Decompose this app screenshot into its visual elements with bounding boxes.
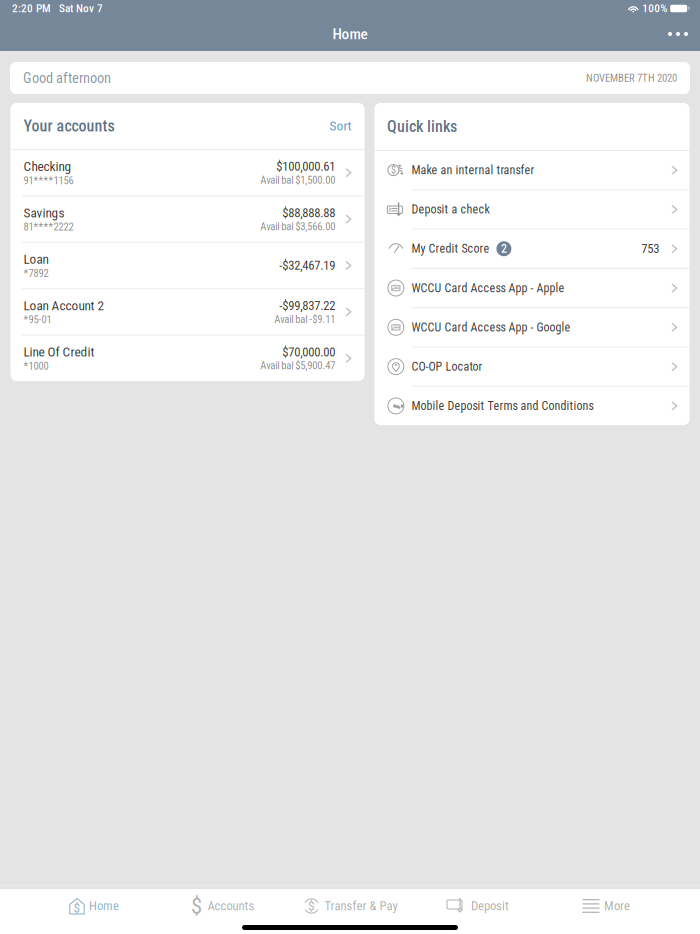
staticText: Deposit a check bbox=[411, 202, 489, 216]
staticText: Avail bal $3,566.00 bbox=[260, 220, 335, 233]
button[interactable]: CO-OP Locator bbox=[374, 347, 689, 386]
staticText: 753 bbox=[641, 241, 659, 256]
button[interactable]: $ bbox=[286, 886, 414, 926]
staticText: $ bbox=[191, 893, 202, 919]
staticText: CO-OP Locator bbox=[411, 360, 482, 374]
staticText: Transfer & Pay bbox=[324, 899, 397, 913]
staticText: WCCU Card Access App - Google bbox=[411, 320, 570, 334]
button[interactable]: Deposit bbox=[414, 886, 542, 926]
staticText: Avail bal $5,900.47 bbox=[260, 359, 335, 372]
staticText: Good afternoon bbox=[23, 70, 111, 86]
button[interactable]: Loan bbox=[10, 243, 364, 288]
button[interactable]: Deposit a check bbox=[374, 190, 689, 229]
staticText: Home bbox=[332, 25, 367, 43]
staticText: 91****1156 bbox=[23, 174, 73, 187]
staticText: $100,000.61 bbox=[276, 159, 335, 174]
button[interactable]: Mobile Deposit Terms and Conditions bbox=[374, 387, 689, 425]
staticText: *95-01 bbox=[23, 313, 51, 326]
button[interactable]: More bbox=[542, 886, 670, 926]
staticText: $ bbox=[391, 164, 396, 176]
staticText: *7892 bbox=[23, 267, 48, 280]
button[interactable]: Sort bbox=[329, 118, 351, 134]
staticText: 81****2222 bbox=[23, 221, 73, 233]
staticText: My Credit Score bbox=[411, 242, 489, 256]
button[interactable]: $ bbox=[30, 886, 158, 926]
staticText: Line Of Credit bbox=[23, 344, 94, 360]
staticText: Avail bal $1,500.00 bbox=[260, 174, 335, 186]
staticText: Mobile Deposit Terms and Conditions bbox=[411, 399, 593, 413]
button[interactable]: My Credit Score bbox=[374, 230, 689, 268]
button[interactable]: $ bbox=[374, 151, 689, 189]
staticText: Deposit bbox=[471, 899, 509, 913]
staticText: WCCU Card Access App - Apple bbox=[411, 281, 564, 295]
staticText: $88,888.88 bbox=[282, 205, 335, 220]
staticText: *1000 bbox=[23, 360, 48, 372]
button[interactable]: $ bbox=[158, 886, 286, 926]
button[interactable]: WCCU Card Access App - Apple bbox=[374, 269, 689, 307]
staticText: $ bbox=[73, 900, 80, 916]
staticText: Savings bbox=[23, 205, 64, 221]
staticText: Quick links bbox=[387, 117, 457, 136]
staticText: Accounts bbox=[207, 899, 254, 913]
staticText: 2:20 PM bbox=[12, 2, 51, 15]
staticText: $70,000.00 bbox=[282, 345, 335, 359]
button[interactable]: WCCU Card Access App - Google bbox=[374, 308, 689, 346]
staticText: NOVEMBER 7TH 2020 bbox=[586, 72, 677, 84]
staticText: Sat Nov 7 bbox=[59, 2, 103, 15]
staticText: Loan Account 2 bbox=[23, 298, 104, 313]
button[interactable]: Savings bbox=[10, 196, 364, 242]
staticText: Checking bbox=[23, 159, 71, 174]
staticText: Avail bal -$9.11 bbox=[274, 313, 335, 326]
staticText: Loan bbox=[23, 251, 48, 267]
staticText: 2 bbox=[501, 242, 507, 256]
staticText: -$32,467.19 bbox=[279, 258, 335, 273]
staticText: -$99,837.22 bbox=[279, 298, 335, 313]
button[interactable]: Line Of Credit bbox=[10, 336, 364, 381]
staticText: Home bbox=[89, 899, 119, 913]
staticText: Sort bbox=[329, 118, 351, 134]
staticText: $ bbox=[308, 898, 315, 914]
staticText: Your accounts bbox=[23, 117, 114, 135]
button[interactable]: More options bbox=[656, 17, 700, 51]
button[interactable]: Loan Account 2 bbox=[10, 289, 364, 335]
staticText: 100% bbox=[642, 2, 667, 15]
button[interactable]: Checking bbox=[10, 150, 364, 195]
staticText: More bbox=[604, 899, 630, 913]
staticText: Make an internal transfer bbox=[411, 163, 534, 177]
